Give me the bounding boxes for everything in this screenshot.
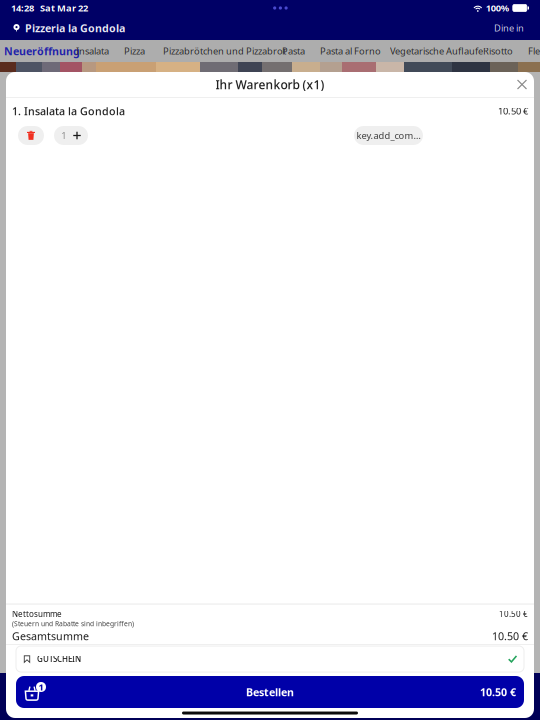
staticText: Vegetarische Auflaufe bbox=[390, 45, 483, 57]
button[interactable]: Vegetarische Auflaufe bbox=[390, 40, 483, 62]
staticText: Ihr Warenkorb (x1) bbox=[215, 76, 324, 92]
staticText: (Steuern und Rabatte sind inbegriffen) bbox=[12, 619, 134, 628]
staticText: 1 bbox=[61, 129, 66, 142]
button[interactable]: GUTSCHEIN bbox=[16, 646, 524, 672]
staticText: 10.50 € bbox=[499, 608, 528, 619]
staticText: 10.50 € bbox=[498, 105, 528, 117]
staticText: Fle bbox=[528, 45, 540, 57]
staticText: 1. Insalata la Gondola bbox=[12, 104, 125, 118]
staticText: Neueröffnung bbox=[4, 44, 80, 58]
staticText: Risotto bbox=[483, 45, 513, 57]
staticText: Dine in bbox=[494, 22, 524, 34]
button[interactable]: Pasta al Forno bbox=[320, 40, 381, 62]
button[interactable]: Remove item bbox=[18, 126, 44, 145]
staticText: Pizzeria la Gondola bbox=[25, 21, 125, 35]
staticText: Pasta al Forno bbox=[320, 45, 381, 57]
staticText: Sat Mar 22 bbox=[40, 2, 88, 14]
staticText: 10.50 € bbox=[492, 629, 528, 643]
staticText: Pizza bbox=[124, 45, 145, 57]
button[interactable]: Close bbox=[510, 72, 534, 96]
staticText: Nettosumme bbox=[12, 608, 62, 619]
staticText: Pizzabrötchen und Pizzabrot bbox=[163, 45, 286, 57]
button[interactable]: Insalata bbox=[76, 40, 109, 62]
button[interactable]: Neueröffnung bbox=[4, 40, 80, 62]
button[interactable]: Fle bbox=[528, 40, 540, 62]
staticText: 1 bbox=[38, 681, 43, 693]
staticText: Gesamtsumme bbox=[12, 629, 89, 643]
staticText: key.add_com… bbox=[356, 129, 420, 142]
staticText: GUTSCHEIN bbox=[37, 654, 81, 664]
button[interactable]: Add one bbox=[54, 126, 88, 145]
button[interactable]: Pizzabrötchen und Pizzabrot bbox=[163, 40, 286, 62]
staticText: Pasta bbox=[282, 45, 305, 57]
staticText: 14:28 bbox=[11, 2, 34, 14]
button[interactable]: Risotto bbox=[483, 40, 513, 62]
button[interactable]: key.add_com… bbox=[354, 126, 423, 145]
staticText: Insalata bbox=[76, 45, 109, 57]
button[interactable]: 1 bbox=[16, 676, 524, 708]
staticText: 100% bbox=[486, 2, 509, 14]
staticText: 10.50 € bbox=[480, 685, 516, 699]
button[interactable]: Dine in bbox=[490, 19, 528, 37]
button[interactable]: Pizza bbox=[124, 40, 145, 62]
staticText: Bestellen bbox=[246, 685, 294, 699]
button[interactable]: Pasta bbox=[282, 40, 305, 62]
